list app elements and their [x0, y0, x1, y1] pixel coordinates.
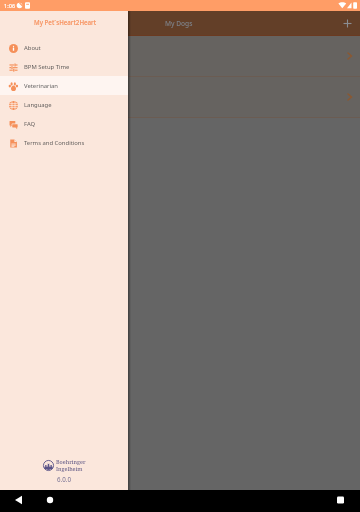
button[interactable]	[0, 36, 360, 76]
staticText: BPM Setup Time	[24, 63, 70, 71]
button[interactable]: Terms and Conditions	[0, 133, 128, 152]
button[interactable]	[0, 77, 360, 117]
staticText: About	[24, 44, 41, 52]
staticText: 1:06	[4, 2, 16, 10]
staticText: 6.0.0	[57, 475, 71, 483]
staticText: Veterinarian	[24, 82, 58, 90]
button[interactable]: Add dog	[338, 14, 356, 32]
staticText: Terms and Conditions	[24, 139, 85, 147]
button[interactable]: BPM Setup Time	[0, 57, 128, 76]
button[interactable]: About	[0, 38, 128, 57]
button[interactable]: Language	[0, 95, 128, 114]
staticText: My Dogs	[165, 19, 193, 28]
staticText: Language	[24, 101, 52, 109]
staticText: FAQ	[24, 120, 36, 128]
button[interactable]: Veterinarian	[0, 76, 128, 95]
staticText: Ingelheim	[56, 465, 83, 472]
staticText: My Pet´sHeart2Heart	[34, 18, 97, 26]
button[interactable]: FAQ	[0, 114, 128, 133]
staticText: Boehringer	[56, 458, 86, 465]
